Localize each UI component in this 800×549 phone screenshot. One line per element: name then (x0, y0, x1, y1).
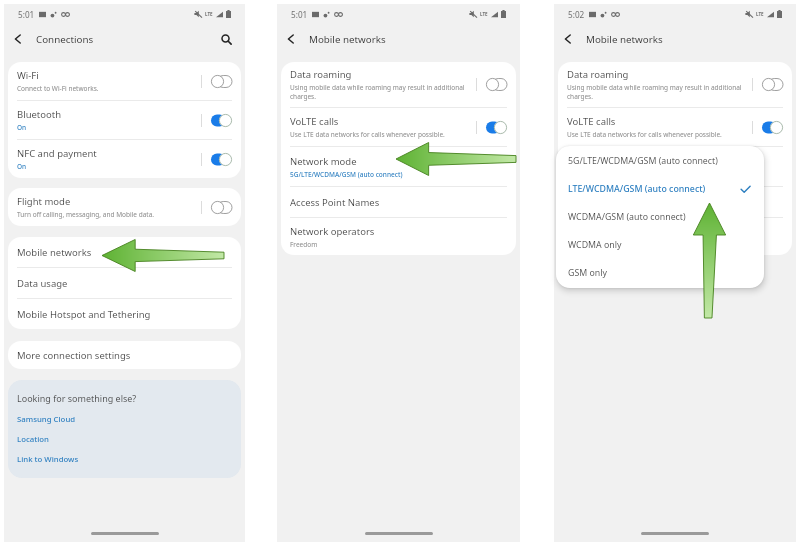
button[interactable]: NFC and payment (8, 140, 241, 178)
button[interactable]: Wi-Fi (8, 62, 241, 100)
staticText: WCDMA/GSM (auto connect) (568, 211, 751, 223)
button[interactable]: Network mode (558, 147, 792, 186)
button[interactable]: Location (17, 434, 49, 445)
button[interactable]: WCDMA/GSM (auto connect) (556, 203, 764, 231)
staticText: More connection settings (17, 349, 131, 362)
staticText: 5:01 (18, 9, 35, 20)
button[interactable]: VoLTE calls (558, 108, 792, 146)
button[interactable]: Back (4, 25, 32, 53)
staticText: Wi-Fi (17, 69, 39, 82)
staticText: WCDMA only (568, 239, 751, 251)
staticText: 5:02 (568, 9, 585, 20)
staticText: LTE (205, 11, 213, 17)
staticText: Turn off calling, messaging, and Mobile … (17, 210, 201, 219)
button[interactable]: Search (214, 27, 238, 51)
button[interactable]: Access Point Names (281, 187, 516, 217)
staticText: Mobile networks (586, 33, 663, 46)
button[interactable]: Link to Windows (17, 454, 79, 465)
button[interactable]: Back (554, 25, 582, 53)
staticText: Access Point Names (290, 196, 380, 209)
staticText: Mobile networks (17, 246, 92, 259)
button[interactable]: More connection settings (8, 341, 241, 369)
staticText: 5G/LTE/WCDMA/GSM (auto connect) (290, 170, 475, 179)
staticText: Using mobile data while roaming may resu… (290, 83, 473, 101)
button[interactable]: Access Point Names (558, 187, 792, 217)
staticText: Network mode (567, 155, 634, 168)
button[interactable]: WCDMA only (556, 231, 764, 259)
button[interactable]: Network operators (281, 218, 516, 255)
staticText: Network mode (290, 155, 357, 168)
staticText: LTE (756, 11, 764, 17)
button[interactable]: Back (277, 25, 305, 53)
button[interactable]: Flight mode (8, 188, 241, 226)
button[interactable]: GSM only (556, 259, 764, 287)
button[interactable]: Mobile Hotspot and Tethering (8, 299, 241, 329)
staticText: Using mobile data while roaming may resu… (567, 83, 750, 101)
staticText: On (17, 123, 201, 132)
staticText: Connect to Wi-Fi networks. (17, 84, 201, 93)
staticText: Network operators (290, 225, 375, 238)
staticText: Data usage (17, 277, 68, 290)
button[interactable]: Data usage (8, 268, 241, 298)
staticText: VoLTE calls (567, 115, 616, 128)
staticText: NFC and payment (17, 147, 97, 160)
staticText: VoLTE calls (290, 115, 339, 128)
staticText: Data roaming (290, 68, 352, 81)
button[interactable]: Network operators (558, 218, 792, 255)
staticText: Freedom (290, 240, 475, 249)
button[interactable]: Bluetooth (8, 101, 241, 139)
staticText: Mobile networks (309, 33, 386, 46)
button[interactable]: 5G/LTE/WCDMA/GSM (auto connect) (556, 147, 764, 175)
staticText: 5G/LTE/WCDMA/GSM (auto connect) (568, 155, 751, 167)
staticText: 5:01 (291, 9, 308, 20)
button[interactable]: Mobile networks (8, 237, 241, 267)
staticText: On (17, 162, 201, 171)
button[interactable]: LTE/WCDMA/GSM (auto connect) (556, 175, 764, 203)
button[interactable]: Data roaming (558, 62, 792, 107)
button[interactable]: VoLTE calls (281, 108, 516, 146)
staticText: Freedom (567, 240, 752, 249)
staticText: Bluetooth (17, 108, 62, 121)
staticText: Flight mode (17, 195, 71, 208)
button[interactable]: Network mode (281, 147, 516, 186)
button[interactable]: Samsung Cloud (17, 414, 76, 425)
staticText: Mobile Hotspot and Tethering (17, 308, 151, 321)
staticText: Connections (36, 33, 94, 46)
staticText: Use LTE data networks for calls whenever… (567, 130, 750, 139)
staticText: GSM only (568, 267, 751, 279)
staticText: LTE (480, 11, 488, 17)
staticText: Data roaming (567, 68, 629, 81)
staticText: Looking for something else? (17, 392, 137, 404)
button[interactable]: Data roaming (281, 62, 516, 107)
staticText: LTE/WCDMA/GSM (auto connect) (568, 183, 740, 195)
staticText: Use LTE data networks for calls whenever… (290, 130, 473, 139)
